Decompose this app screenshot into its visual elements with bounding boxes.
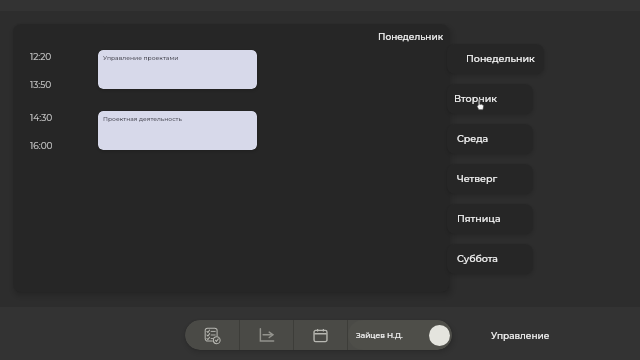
- staticText: Управление: [491, 330, 550, 341]
- button[interactable]: Управление проектами: [98, 50, 257, 89]
- button[interactable]: Зайцев Н.Д.: [348, 320, 452, 350]
- button[interactable]: Chart: [240, 320, 293, 350]
- staticText: Понедельник: [378, 31, 444, 42]
- staticText: Управление проектами: [103, 54, 179, 61]
- button[interactable]: Calendar: [294, 320, 347, 350]
- staticText: Зайцев Н.Д.: [356, 331, 403, 340]
- staticText: Понедельник: [466, 53, 535, 65]
- button[interactable]: Проектная деятельность: [98, 111, 257, 150]
- staticText: 12:20: [30, 51, 52, 62]
- staticText: Пятница: [457, 213, 501, 225]
- staticText: 13:50: [30, 79, 52, 90]
- button[interactable]: Tasks: [185, 320, 239, 350]
- button[interactable]: Среда: [447, 124, 533, 154]
- button[interactable]: Вторник: [447, 84, 533, 114]
- button[interactable]: Четверг: [447, 164, 533, 194]
- staticText: 14:30: [30, 112, 53, 123]
- button[interactable]: Суббота: [447, 244, 533, 274]
- button[interactable]: Пятница: [447, 204, 533, 234]
- staticText: Вторник: [454, 93, 497, 105]
- button[interactable]: Управление: [483, 320, 557, 350]
- button[interactable]: Понедельник: [447, 44, 544, 74]
- staticText: Четверг: [457, 173, 498, 185]
- staticText: Проектная деятельность: [103, 115, 182, 122]
- staticText: 16:00: [30, 140, 53, 151]
- staticText: Среда: [457, 133, 489, 145]
- staticText: Суббота: [457, 253, 498, 265]
